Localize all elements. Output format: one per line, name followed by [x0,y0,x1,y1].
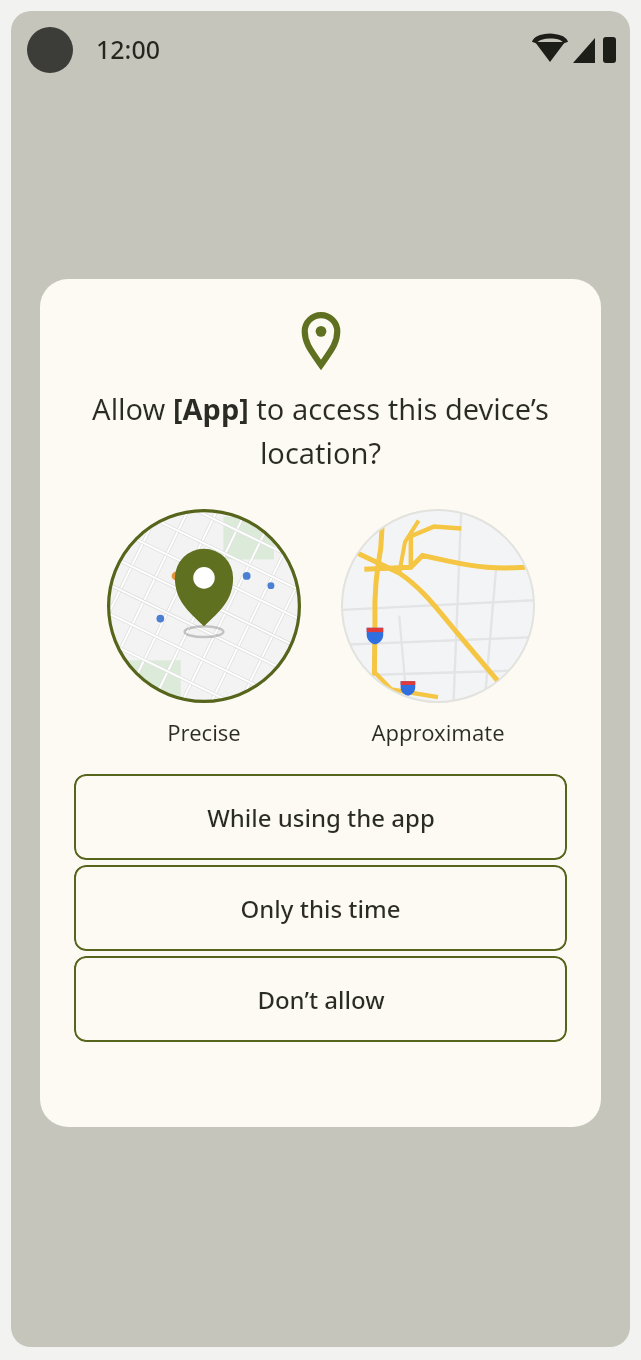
staticText: 12:00 [96,32,161,66]
staticText: Approximate [371,717,505,747]
button[interactable]: Don’t allow [74,956,567,1042]
staticText: Don’t allow [257,983,385,1016]
button[interactable]: While using the app [74,774,567,860]
button[interactable]: Approximate [338,509,538,747]
staticText: Allow [App] to access this device’s loca… [60,389,581,472]
other: Location [299,311,343,367]
staticText: While using the app [207,801,435,834]
staticText: Only this time [240,892,401,925]
button[interactable]: Only this time [74,865,567,951]
button[interactable]: Precise [104,509,304,747]
staticText: Precise [167,717,241,747]
